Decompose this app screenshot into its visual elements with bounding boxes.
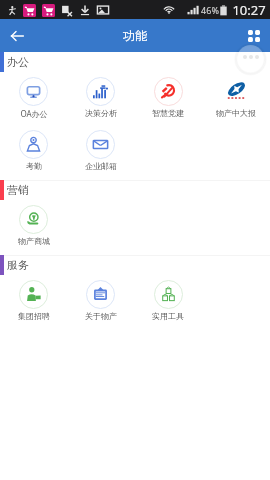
staticText: 决策分析	[85, 108, 117, 118]
staticText: 集团招聘	[18, 311, 50, 321]
staticText: 46%	[201, 4, 219, 16]
staticText: 物产中大报	[216, 108, 256, 118]
button[interactable]: All apps	[237, 19, 270, 52]
button[interactable]: 智慧党建	[134, 72, 202, 125]
staticText: 物产商城	[18, 236, 50, 246]
button[interactable]: 企业邮箱	[67, 125, 134, 178]
staticText: OA办公	[20, 108, 48, 119]
staticText: 服务	[7, 258, 29, 272]
staticText: 智慧党建	[152, 108, 184, 118]
button[interactable]: 决策分析	[67, 72, 134, 125]
staticText: 企业邮箱	[85, 161, 117, 171]
button[interactable]: 考勤	[0, 125, 67, 178]
staticText: 关于物产	[85, 311, 117, 321]
button[interactable]: Back	[0, 19, 33, 52]
staticText: 考勤	[26, 161, 42, 171]
staticText: 实用工具	[152, 311, 184, 321]
button[interactable]: More options	[236, 44, 265, 73]
button[interactable]: 物产商城	[0, 200, 67, 253]
button[interactable]: OA办公	[0, 72, 67, 125]
staticText: 10:27	[232, 1, 266, 19]
button[interactable]: 关于物产	[67, 275, 134, 328]
staticText: 办公	[7, 55, 29, 69]
staticText: 功能	[123, 28, 147, 43]
button[interactable]: 物产中大报	[202, 72, 270, 125]
staticText: 营销	[7, 183, 29, 197]
button[interactable]: 实用工具	[134, 275, 202, 328]
button[interactable]: 集团招聘	[0, 275, 67, 328]
